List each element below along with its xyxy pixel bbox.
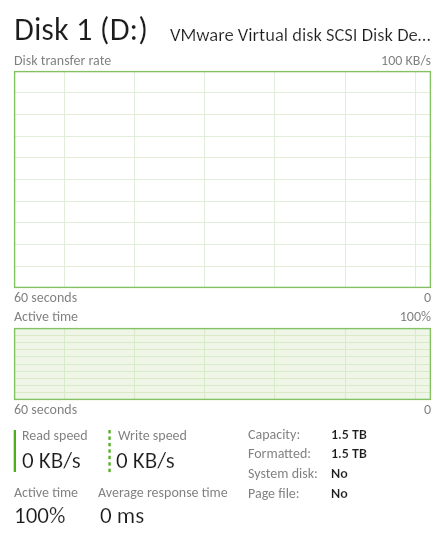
staticText: Formatted: [248, 445, 358, 469]
staticText: Page file: [248, 485, 358, 509]
staticText: 100 KB/s [271, 52, 431, 76]
staticText: 60 seconds [14, 289, 174, 313]
staticText: Disk transfer rate [14, 52, 174, 76]
staticText: 0 KB/s [116, 446, 236, 485]
staticText: Active time [14, 484, 134, 508]
staticText: Capacity: [248, 426, 358, 450]
staticText: 1.5 TB [331, 445, 421, 469]
staticText: No [331, 465, 421, 489]
staticText: 0 [271, 289, 431, 313]
staticText: 0 KB/s [22, 446, 142, 485]
staticText: VMware Virtual disk SCSI Disk De… [170, 23, 445, 54]
staticText: 1.5 TB [331, 426, 421, 450]
staticText: No [331, 485, 421, 509]
staticText: 60 seconds [14, 401, 174, 425]
staticText: 100% [271, 308, 431, 332]
staticText: Write speed [118, 427, 238, 451]
staticText: 100% [14, 501, 134, 540]
staticText: Active time [14, 308, 174, 332]
staticText: Read speed [22, 427, 142, 451]
staticText: 0 ms [100, 501, 220, 540]
staticText: System disk: [248, 465, 358, 489]
staticText: Average response time [98, 484, 268, 508]
staticText: 0 [271, 401, 431, 425]
staticText: Disk 1 (D:) [14, 9, 194, 64]
